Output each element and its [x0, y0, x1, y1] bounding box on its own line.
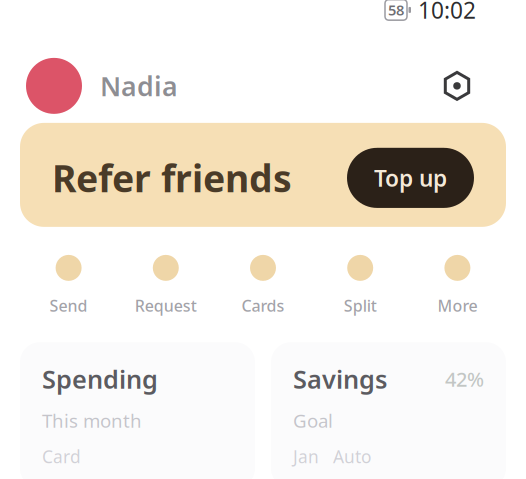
staticText: Savings: [293, 362, 387, 396]
button[interactable]: Cards: [214, 255, 312, 316]
staticText: Jan: [293, 445, 319, 468]
staticText: Spending: [42, 362, 158, 396]
button[interactable]: Top up: [347, 148, 474, 208]
staticText: Send: [50, 295, 88, 316]
staticText: 42%: [445, 366, 484, 392]
button[interactable]: Spending: [20, 342, 255, 479]
staticText: Cards: [241, 295, 284, 316]
staticText: This month: [42, 408, 142, 433]
staticText: Auto: [333, 445, 371, 468]
staticText: More: [437, 295, 477, 316]
button[interactable]: More: [409, 255, 506, 316]
staticText: Request: [135, 295, 197, 316]
staticText: Card: [42, 445, 81, 468]
staticText: Refer friends: [52, 153, 292, 203]
button[interactable]: Send: [20, 255, 117, 316]
staticText: 58: [388, 0, 404, 20]
staticText: Top up: [374, 163, 447, 193]
button[interactable]: Request: [117, 255, 214, 316]
staticText: Nadia: [100, 68, 178, 104]
staticText: Goal: [293, 408, 333, 433]
staticText: 10:02: [418, 0, 476, 25]
button[interactable]: Split: [312, 255, 409, 316]
button[interactable]: Settings: [442, 71, 472, 101]
staticText: Split: [344, 295, 377, 316]
button[interactable]: Savings: [271, 342, 506, 479]
